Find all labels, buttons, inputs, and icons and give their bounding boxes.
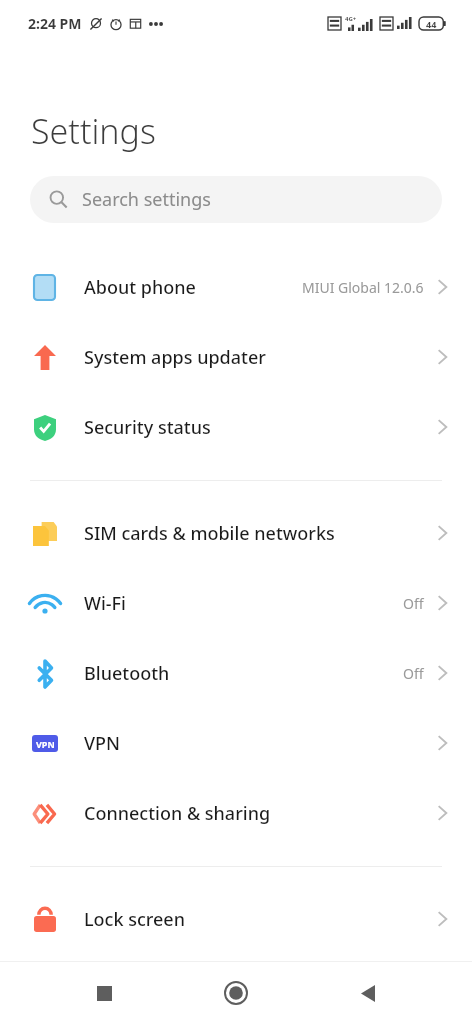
button[interactable]: Recents [76,965,132,1021]
button[interactable]: VPN [0,708,472,778]
button[interactable]: Home [208,965,264,1021]
staticText: About phone [84,275,302,300]
staticText: Wi-Fi [84,591,403,616]
button[interactable]: Back [340,965,396,1021]
button[interactable]: Lock screen [0,884,472,954]
button[interactable]: About phone [0,252,472,322]
button[interactable]: SIM cards & mobile networks [0,498,472,568]
staticText: Bluetooth [84,661,403,686]
staticText: Lock screen [84,907,437,932]
staticText: Security status [84,415,437,440]
staticText: Off [403,594,424,613]
staticText: Connection & sharing [84,801,437,826]
staticText: 44 [426,18,437,30]
staticText: VPN [36,738,55,750]
button[interactable]: Wi-Fi [0,568,472,638]
staticText: SIM cards & mobile networks [84,521,437,546]
button[interactable]: Connection & sharing [0,778,472,848]
staticText: MIUI Global 12.0.6 [302,278,424,297]
staticText: Search settings [82,187,211,212]
button[interactable]: System apps updater [0,322,472,392]
staticText: Off [403,664,424,683]
staticText: VPN [84,731,437,756]
staticText: System apps updater [84,345,437,370]
staticText: Settings [31,108,156,154]
button[interactable]: Bluetooth [0,638,472,708]
staticText: 4G+ [345,15,357,23]
button[interactable]: Search settings [30,176,442,223]
staticText: 2:24 PM [28,14,82,33]
button[interactable]: Security status [0,392,472,462]
